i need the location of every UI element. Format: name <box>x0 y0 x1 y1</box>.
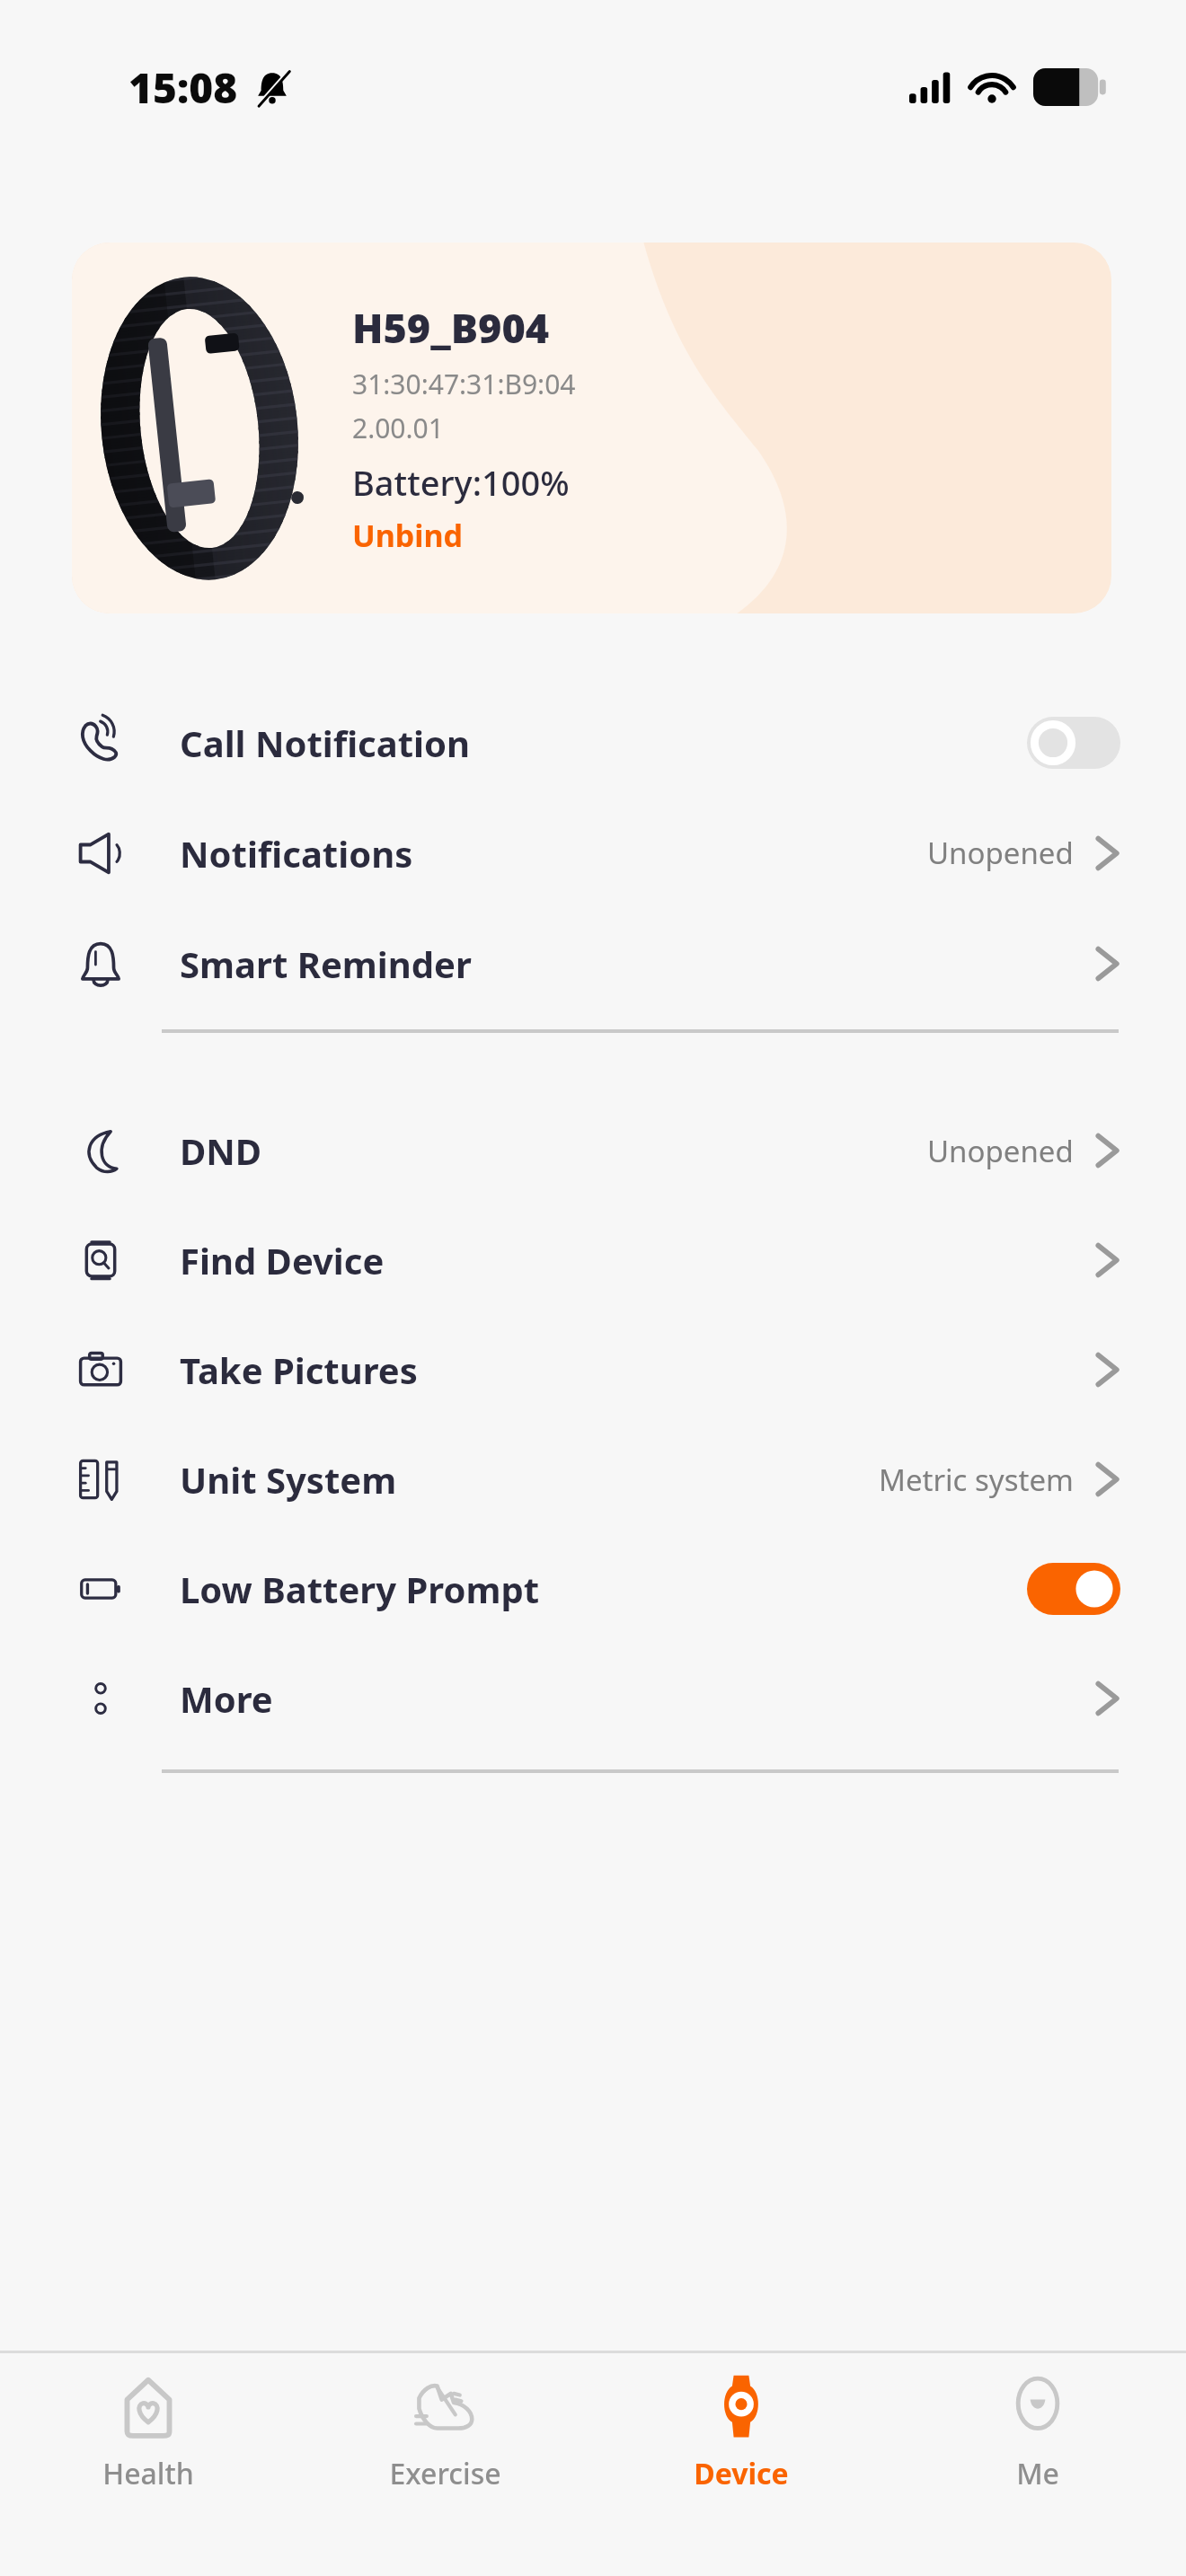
staticText: Battery:100% <box>352 459 570 506</box>
button[interactable]: DND <box>0 1096 1186 1205</box>
staticText: Call Notification <box>180 719 471 767</box>
staticText: Unopened <box>927 1131 1074 1171</box>
staticText: Low Battery Prompt <box>180 1565 540 1613</box>
staticText: DND <box>180 1126 262 1175</box>
staticText: Find Device <box>180 1236 385 1284</box>
staticText: H59_B904 <box>352 300 550 355</box>
staticText: Notifications <box>180 829 413 878</box>
button[interactable]: Health <box>0 2353 296 2576</box>
button[interactable]: Unit System <box>0 1425 1186 1534</box>
button[interactable]: Toggle on <box>1027 1563 1120 1615</box>
staticText: 15:08 <box>128 59 238 116</box>
button[interactable]: Toggle off <box>1027 717 1120 769</box>
button[interactable]: Me <box>889 2353 1186 2576</box>
staticText: More <box>180 1674 273 1723</box>
button[interactable]: Take Pictures <box>0 1315 1186 1425</box>
staticText: 31:30:47:31:B9:04 <box>352 366 576 402</box>
staticText: 2.00.01 <box>352 410 444 446</box>
button[interactable]: Call Notification <box>0 687 1186 798</box>
staticText: Device <box>694 2454 789 2493</box>
staticText: Health <box>102 2454 194 2493</box>
staticText: Unopened <box>927 833 1074 873</box>
staticText: Unbind <box>352 515 464 556</box>
button[interactable]: More <box>0 1644 1186 1753</box>
button[interactable]: Find Device <box>0 1205 1186 1315</box>
staticText: Metric system <box>879 1460 1074 1500</box>
button[interactable]: Low Battery Prompt <box>0 1534 1186 1644</box>
button[interactable]: Device <box>593 2353 889 2576</box>
staticText: Me <box>1016 2454 1059 2493</box>
button[interactable]: Unbind <box>352 515 464 556</box>
staticText: Take Pictures <box>180 1345 418 1394</box>
staticText: Smart Reminder <box>180 940 472 988</box>
staticText: Unit System <box>180 1455 397 1504</box>
button[interactable]: Smart Reminder <box>0 908 1186 1019</box>
staticText: Exercise <box>389 2454 501 2493</box>
button[interactable]: H59_B904 <box>72 243 1111 613</box>
button[interactable]: Notifications <box>0 798 1186 908</box>
button[interactable]: Exercise <box>296 2353 593 2576</box>
